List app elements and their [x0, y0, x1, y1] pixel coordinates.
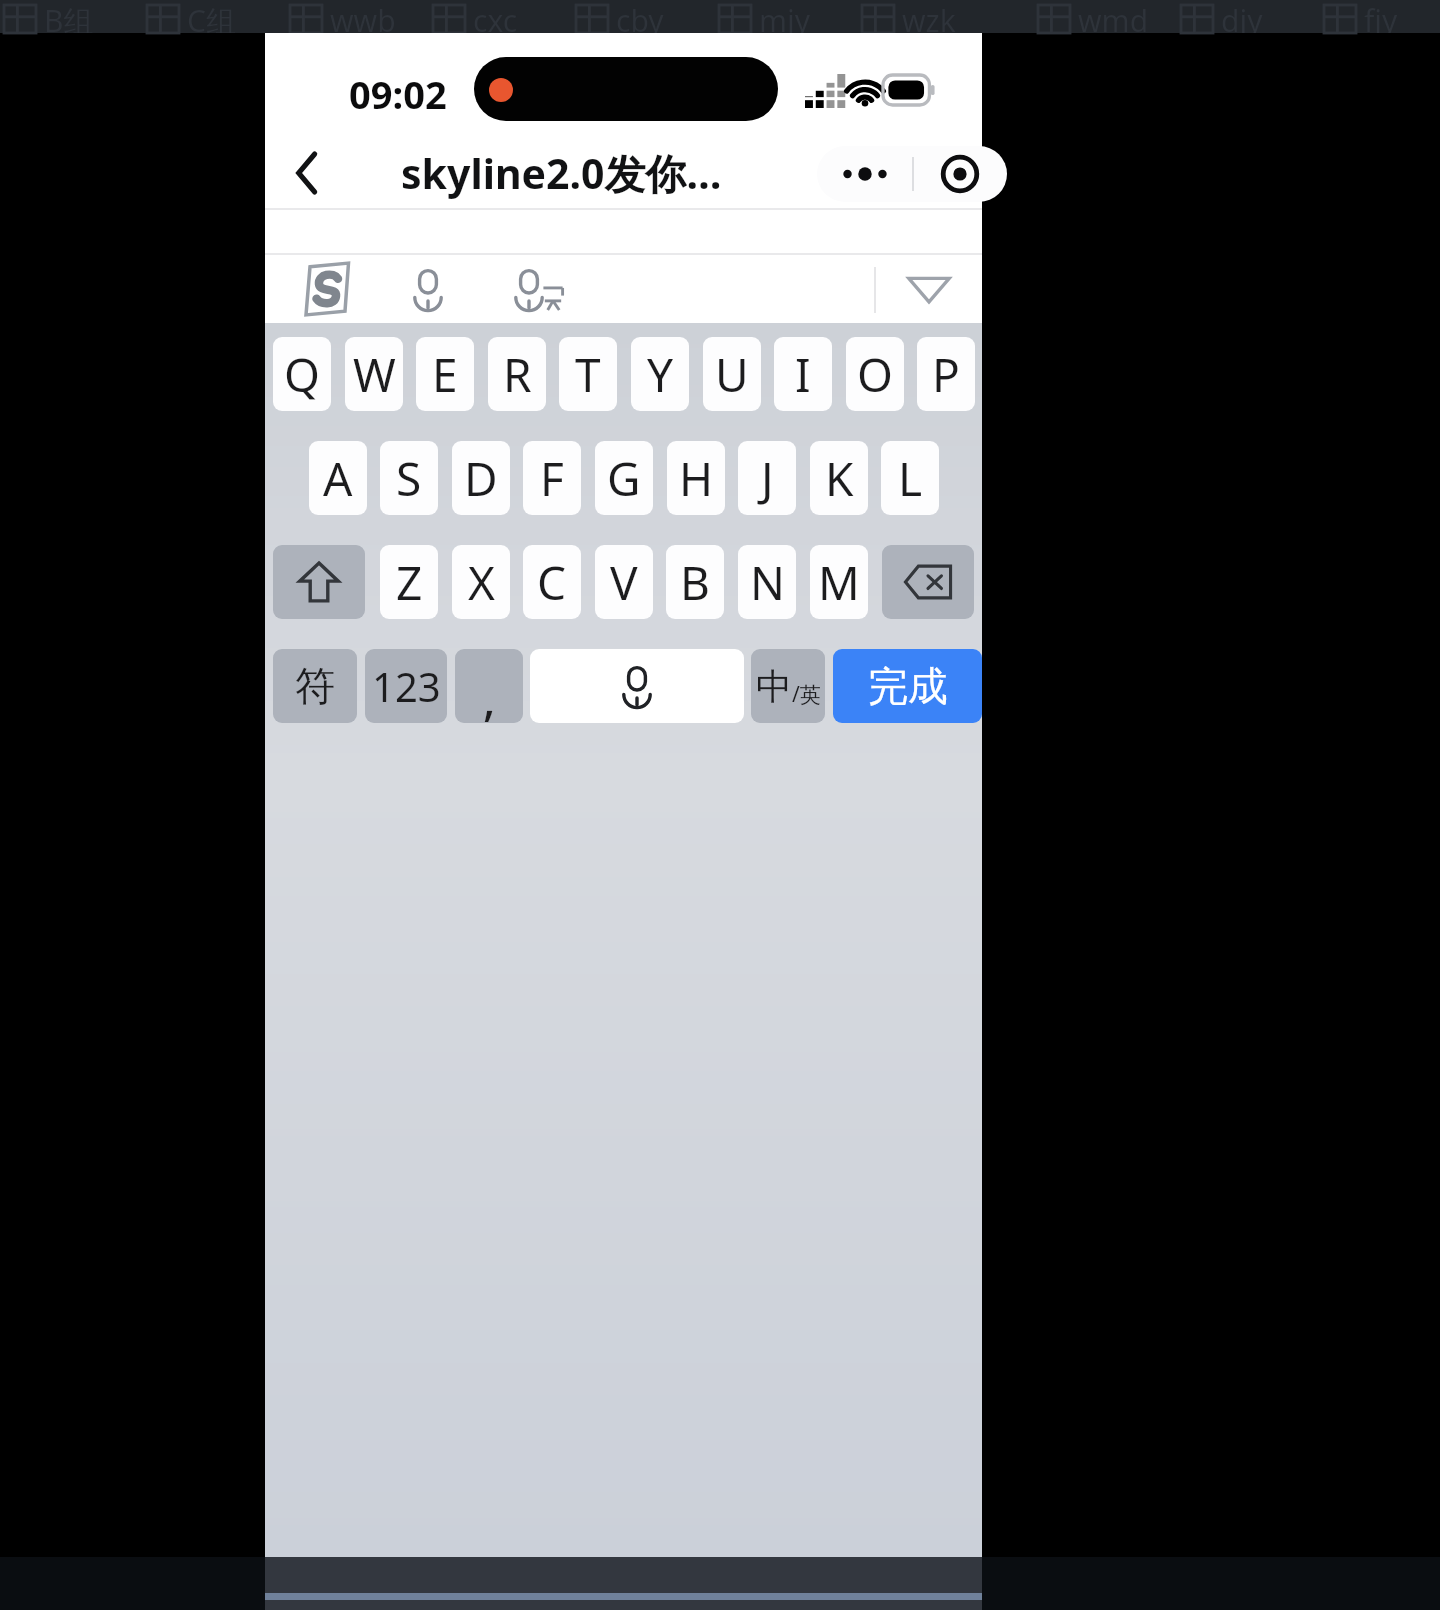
staticText: N: [750, 551, 785, 614]
button[interactable]: P: [917, 337, 975, 411]
staticText: I: [795, 343, 811, 406]
button[interactable]: N: [738, 545, 796, 619]
staticText: cxc: [473, 0, 518, 33]
staticText: 符: [295, 661, 335, 711]
button[interactable]: C: [523, 545, 581, 619]
staticText: J: [761, 447, 774, 510]
staticText: H: [679, 447, 714, 510]
button[interactable]: M: [810, 545, 868, 619]
staticText: 123: [372, 659, 441, 713]
button[interactable]: Close: [912, 146, 1007, 202]
button[interactable]: D: [452, 441, 510, 515]
staticText: wwb: [330, 0, 396, 33]
button[interactable]: Sogou input method: [283, 255, 371, 323]
button[interactable]: More options: [817, 146, 912, 202]
staticText: L: [898, 447, 923, 510]
staticText: O: [857, 343, 893, 406]
button[interactable]: O: [846, 337, 904, 411]
staticText: M: [818, 551, 860, 614]
button[interactable]: Backspace: [882, 545, 974, 619]
button[interactable]: Shift: [273, 545, 365, 619]
staticText: T: [575, 343, 601, 406]
staticText: 完成: [868, 661, 948, 711]
button[interactable]: X: [452, 545, 510, 619]
button[interactable]: T: [559, 337, 617, 411]
staticText: 中: [756, 664, 792, 709]
button[interactable]: V: [595, 545, 653, 619]
staticText: R: [503, 343, 532, 406]
staticText: wmd: [1078, 0, 1149, 33]
staticText: K: [825, 447, 854, 510]
staticText: mjy: [759, 0, 811, 33]
staticText: ,: [483, 667, 496, 723]
button[interactable]: E: [416, 337, 474, 411]
button[interactable]: Q: [273, 337, 331, 411]
staticText: cby: [616, 0, 664, 33]
button[interactable]: 123: [365, 649, 447, 723]
button[interactable]: Voice translation: [491, 255, 583, 323]
staticText: C: [537, 551, 567, 614]
staticText: B组: [44, 0, 94, 33]
staticText: 09:02: [349, 68, 447, 120]
staticText: C组: [187, 0, 236, 33]
button[interactable]: S: [380, 441, 438, 515]
button[interactable]: R: [488, 337, 546, 411]
staticText: W: [353, 343, 396, 406]
button[interactable]: G: [595, 441, 653, 515]
button[interactable]: W: [345, 337, 403, 411]
staticText: Z: [396, 551, 423, 614]
button[interactable]: Comma: [455, 649, 523, 723]
staticText: B: [680, 551, 710, 614]
staticText: fjy: [1364, 0, 1398, 33]
staticText: V: [610, 551, 638, 614]
button[interactable]: Space: [530, 649, 744, 723]
button[interactable]: Back: [271, 138, 343, 208]
button[interactable]: 中: [751, 649, 825, 723]
button[interactable]: U: [703, 337, 761, 411]
staticText: P: [932, 343, 960, 406]
staticText: /英: [792, 680, 821, 709]
staticText: wzk: [902, 0, 956, 33]
staticText: U: [715, 343, 749, 406]
staticText: A: [323, 447, 353, 510]
staticText: Y: [647, 343, 674, 406]
button[interactable]: Voice input: [389, 255, 467, 323]
button[interactable]: K: [810, 441, 868, 515]
button[interactable]: H: [667, 441, 725, 515]
staticText: S: [396, 447, 422, 510]
staticText: F: [540, 447, 564, 510]
button[interactable]: 完成: [833, 649, 982, 723]
button[interactable]: 符: [273, 649, 357, 723]
button[interactable]: B: [666, 545, 724, 619]
button[interactable]: I: [774, 337, 832, 411]
staticText: E: [432, 343, 458, 406]
button[interactable]: Hide keyboard: [876, 255, 982, 323]
staticText: D: [464, 447, 498, 510]
staticText: skyline2.0发你…: [401, 145, 722, 201]
button[interactable]: L: [881, 441, 939, 515]
button[interactable]: F: [523, 441, 581, 515]
button[interactable]: Z: [380, 545, 438, 619]
staticText: X: [468, 551, 495, 614]
button[interactable]: A: [309, 441, 367, 515]
staticText: Q: [284, 343, 320, 406]
staticText: G: [607, 447, 641, 510]
button[interactable]: J: [738, 441, 796, 515]
staticText: djy: [1221, 0, 1263, 33]
button[interactable]: Y: [631, 337, 689, 411]
